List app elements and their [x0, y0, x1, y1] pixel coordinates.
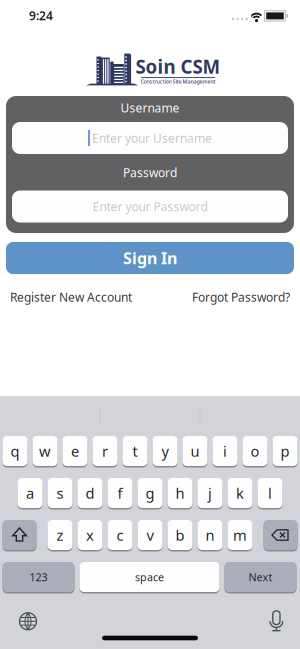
- staticText: g: [145, 483, 154, 503]
- staticText: i: [223, 441, 227, 461]
- staticText: o: [250, 441, 259, 461]
- staticText: y: [161, 441, 168, 461]
- button[interactable]: w: [32, 436, 57, 467]
- button[interactable]: x: [77, 520, 102, 551]
- button[interactable]: h: [167, 478, 192, 509]
- button[interactable]: Register New Account: [10, 289, 132, 305]
- button[interactable]: l: [257, 478, 282, 509]
- button[interactable]: m: [227, 520, 252, 551]
- button[interactable]: v: [137, 520, 162, 551]
- button[interactable]: b: [167, 520, 192, 551]
- button[interactable]: Next: [224, 562, 296, 593]
- button[interactable]: 123: [2, 562, 74, 593]
- staticText: Forgot Password?: [192, 289, 290, 305]
- button[interactable]: o: [242, 436, 267, 467]
- button[interactable]: space: [79, 562, 219, 593]
- staticText: t: [132, 441, 137, 461]
- button[interactable]: k: [227, 478, 252, 509]
- staticText: l: [268, 483, 272, 503]
- staticText: f: [117, 483, 122, 503]
- button[interactable]: t: [122, 436, 147, 467]
- staticText: q: [10, 441, 19, 461]
- staticText: 9:24: [29, 7, 53, 23]
- button[interactable]: d: [77, 478, 102, 509]
- button[interactable]: Shift: [2, 520, 36, 551]
- button[interactable]: Delete: [263, 520, 297, 551]
- staticText: r: [102, 441, 108, 461]
- staticText: Construction Site Management: [140, 78, 215, 85]
- staticText: k: [236, 483, 244, 503]
- button[interactable]: p: [272, 436, 297, 467]
- staticText: a: [26, 483, 34, 503]
- staticText: v: [146, 525, 153, 545]
- button[interactable]: c: [107, 520, 132, 551]
- button[interactable]: Next keyboard: [15, 608, 41, 634]
- staticText: Enter your Password: [92, 198, 207, 214]
- button[interactable]: Enter your Password: [12, 190, 288, 222]
- staticText: Soin CSM: [135, 54, 220, 79]
- button[interactable]: Sign In: [6, 242, 294, 274]
- staticText: Password: [123, 165, 177, 180]
- staticText: d: [85, 483, 94, 503]
- staticText: p: [280, 441, 289, 461]
- staticText: space: [135, 570, 164, 584]
- staticText: Register New Account: [10, 289, 132, 305]
- staticText: e: [71, 441, 79, 461]
- button[interactable]: j: [197, 478, 222, 509]
- staticText: Username: [120, 100, 179, 116]
- button[interactable]: y: [152, 436, 177, 467]
- button[interactable]: e: [62, 436, 87, 467]
- staticText: x: [86, 525, 94, 545]
- button[interactable]: u: [182, 436, 207, 467]
- staticText: n: [205, 525, 214, 545]
- staticText: 123: [29, 570, 47, 584]
- button[interactable]: q: [2, 436, 27, 467]
- button[interactable]: g: [137, 478, 162, 509]
- staticText: Enter your Username: [92, 130, 212, 146]
- staticText: Sign In: [123, 247, 177, 269]
- button[interactable]: s: [47, 478, 72, 509]
- button[interactable]: Dictate: [263, 606, 289, 636]
- button[interactable]: f: [107, 478, 132, 509]
- staticText: b: [175, 525, 184, 545]
- staticText: w: [39, 441, 51, 461]
- staticText: Next: [248, 570, 272, 584]
- staticText: u: [190, 441, 199, 461]
- button[interactable]: z: [47, 520, 72, 551]
- button[interactable]: Forgot Password?: [192, 289, 290, 305]
- staticText: s: [56, 483, 63, 503]
- staticText: z: [56, 525, 63, 545]
- button[interactable]: i: [212, 436, 237, 467]
- staticText: h: [175, 483, 184, 503]
- button[interactable]: Enter your Username: [12, 122, 288, 154]
- staticText: c: [116, 525, 123, 545]
- button[interactable]: a: [17, 478, 42, 509]
- button[interactable]: r: [92, 436, 117, 467]
- staticText: j: [208, 483, 212, 503]
- staticText: m: [233, 525, 247, 545]
- button[interactable]: n: [197, 520, 222, 551]
